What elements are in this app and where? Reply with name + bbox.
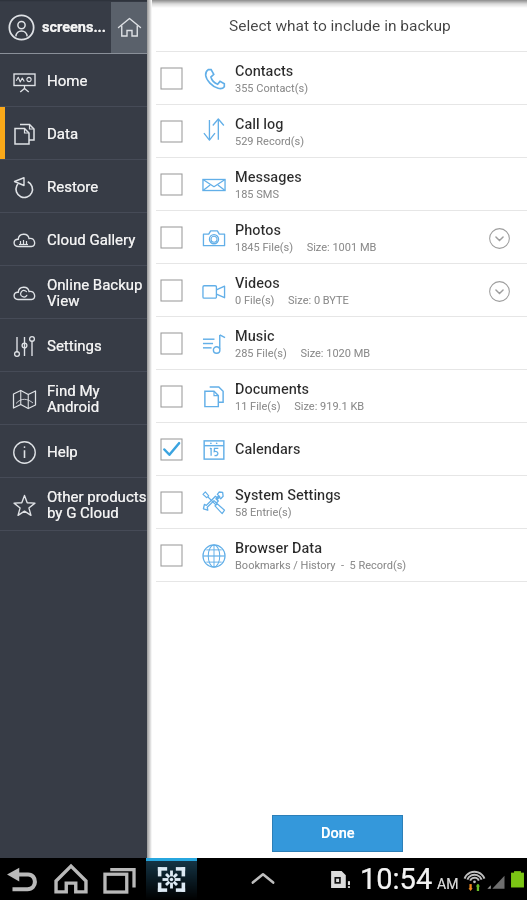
button[interactable]: Back bbox=[5, 858, 39, 900]
staticText: Browser Data bbox=[235, 540, 322, 557]
button[interactable]: Find My Android bbox=[0, 372, 147, 425]
staticText: Restore bbox=[47, 178, 99, 196]
staticText: Photos bbox=[235, 222, 281, 239]
staticText: Contacts bbox=[235, 63, 294, 80]
button[interactable]: Call log bbox=[152, 105, 527, 158]
button[interactable]: Expand bbox=[482, 221, 516, 255]
staticText: Done bbox=[321, 825, 355, 842]
staticText: Settings bbox=[47, 337, 102, 355]
staticText: 10:54 bbox=[360, 862, 433, 896]
staticText: 285 File(s) Size: 1020 MB bbox=[235, 347, 371, 360]
button[interactable]: Data bbox=[0, 107, 147, 160]
staticText: Call log bbox=[235, 116, 284, 133]
staticText: Bookmarks / History - 5 Record(s) bbox=[235, 559, 407, 572]
button[interactable]: Restore bbox=[0, 160, 147, 213]
staticText: 185 SMS bbox=[235, 188, 279, 201]
staticText: screens... bbox=[42, 19, 107, 36]
button[interactable]: Home bbox=[111, 2, 147, 53]
button[interactable]: screens... bbox=[0, 2, 111, 53]
button[interactable]: Calendars bbox=[152, 423, 527, 476]
staticText: Help bbox=[47, 443, 78, 461]
staticText: Calendars bbox=[235, 441, 301, 458]
button[interactable]: Contacts bbox=[152, 52, 527, 105]
button[interactable]: Help bbox=[0, 425, 147, 478]
staticText: System Settings bbox=[235, 487, 341, 504]
staticText: Find My Android bbox=[47, 382, 100, 416]
staticText: Home bbox=[47, 72, 88, 90]
button[interactable]: Messages bbox=[152, 158, 527, 211]
button[interactable]: Browser Data bbox=[152, 529, 527, 582]
button[interactable]: Expand bbox=[482, 274, 516, 308]
staticText: Documents bbox=[235, 381, 310, 398]
staticText: 58 Entrie(s) bbox=[235, 506, 292, 519]
button[interactable]: Music bbox=[152, 317, 527, 370]
staticText: Other products by G Cloud bbox=[47, 488, 147, 522]
button[interactable]: Home bbox=[0, 54, 147, 107]
staticText: 355 Contact(s) bbox=[235, 82, 308, 95]
staticText: 0 File(s) Size: 0 BYTE bbox=[235, 294, 349, 307]
staticText: Videos bbox=[235, 275, 280, 292]
staticText: 529 Record(s) bbox=[235, 135, 305, 148]
staticText: Online Backup View bbox=[47, 276, 143, 310]
staticText: AM bbox=[437, 876, 459, 892]
button[interactable]: Cloud Gallery bbox=[0, 213, 147, 266]
button[interactable]: Done bbox=[273, 816, 402, 851]
button[interactable]: Online Backup View bbox=[0, 266, 147, 319]
staticText: 11 File(s) Size: 919.1 KB bbox=[235, 400, 365, 413]
staticText: Cloud Gallery bbox=[47, 231, 136, 249]
button[interactable]: Screenshot bbox=[156, 858, 187, 900]
staticText: Data bbox=[47, 125, 79, 143]
button[interactable]: Photos bbox=[152, 211, 527, 264]
button[interactable]: Other products by G Cloud bbox=[0, 478, 147, 531]
staticText: Select what to include in backup bbox=[229, 17, 451, 35]
staticText: Music bbox=[235, 328, 275, 345]
staticText: 1845 File(s) Size: 1001 MB bbox=[235, 241, 377, 254]
button[interactable]: Show notifications bbox=[248, 858, 278, 900]
button[interactable]: Home bbox=[54, 858, 88, 900]
button[interactable]: System Settings bbox=[152, 476, 527, 529]
button[interactable]: Recents bbox=[103, 858, 136, 900]
button[interactable]: Videos bbox=[152, 264, 527, 317]
button[interactable]: Documents bbox=[152, 370, 527, 423]
staticText: Messages bbox=[235, 169, 302, 186]
button[interactable]: Settings bbox=[0, 319, 147, 372]
